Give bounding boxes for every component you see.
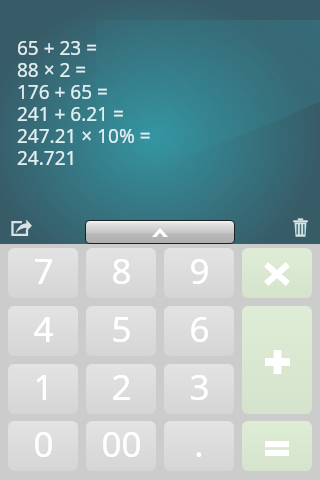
staticText: 3	[189, 364, 210, 411]
button[interactable]: 00	[86, 421, 156, 471]
button[interactable]: Share	[6, 212, 36, 242]
button[interactable]: 2	[86, 364, 156, 414]
button[interactable]: 8	[86, 248, 156, 298]
staticText: .	[194, 421, 204, 468]
button[interactable]	[242, 248, 312, 298]
button[interactable]: 1	[8, 364, 78, 414]
button[interactable]: 9	[164, 248, 234, 298]
button[interactable]: 3	[164, 364, 234, 414]
staticText: 5	[111, 306, 132, 353]
staticText: 8	[111, 248, 132, 295]
staticText: 9	[189, 248, 210, 295]
staticText: 241 + 6.21 =	[17, 101, 124, 123]
staticText: 176 + 65 =	[17, 79, 108, 101]
staticText: 0	[33, 421, 54, 468]
staticText: 1	[33, 364, 54, 411]
staticText: 7	[33, 248, 54, 295]
button[interactable]: 5	[86, 306, 156, 356]
button[interactable]: 6	[164, 306, 234, 356]
button[interactable]: 0	[8, 421, 78, 471]
button[interactable]	[242, 421, 312, 471]
staticText: 4	[33, 306, 54, 353]
button[interactable]: Delete	[286, 213, 314, 241]
button[interactable]: Expand history	[86, 221, 234, 243]
button[interactable]: .	[164, 421, 234, 471]
staticText: 88 × 2 =	[17, 57, 87, 79]
staticText: 247.21 × 10% =	[17, 123, 151, 145]
staticText: 24.721	[17, 145, 77, 167]
staticText: 00	[101, 421, 142, 468]
staticText: 2	[111, 364, 132, 411]
staticText: 65 + 23 =	[17, 35, 98, 57]
button[interactable]: 7	[8, 248, 78, 298]
staticText: 6	[189, 306, 210, 353]
button[interactable]: 4	[8, 306, 78, 356]
button[interactable]	[242, 306, 312, 414]
